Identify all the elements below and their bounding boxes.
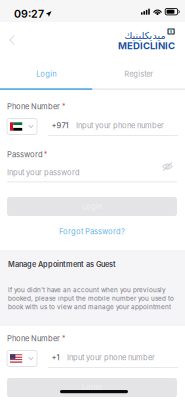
staticText: +1	[51, 353, 59, 362]
staticText: Input your phone number	[67, 353, 155, 362]
staticText: Input your phone number	[76, 121, 164, 130]
staticText: Login	[82, 202, 102, 211]
staticText: If you didn't have an account when you p…	[8, 286, 166, 294]
staticText: +971	[51, 121, 68, 130]
staticText: Phone Number	[7, 102, 60, 111]
staticText: *	[44, 150, 48, 159]
staticText: Manage Appointment as Guest	[8, 260, 116, 269]
staticText: Register	[124, 69, 153, 79]
button[interactable]: Select country code	[7, 350, 37, 366]
staticText: 09:27	[14, 7, 44, 20]
staticText: *	[62, 102, 66, 111]
button[interactable]: Login	[0, 64, 92, 90]
button[interactable]: Register	[92, 64, 185, 90]
staticText: Forgot Password?	[59, 227, 125, 236]
staticText: *	[62, 334, 66, 343]
button[interactable]: Select country code	[7, 118, 37, 134]
staticText: Login	[82, 383, 102, 392]
staticText: ميديكلينيك	[124, 30, 165, 41]
staticText: Password	[7, 150, 43, 159]
button[interactable]: Show password	[162, 162, 173, 171]
staticText: book with us to view and manage your app…	[8, 303, 171, 311]
staticText: Login	[36, 69, 56, 79]
button[interactable]: Forgot Password?	[7, 226, 177, 237]
staticText: Phone Number	[7, 334, 60, 343]
staticText: Input your password	[7, 168, 80, 177]
button[interactable]: Back	[4, 32, 20, 48]
staticText: MEDICLINIC	[118, 40, 175, 52]
staticText: booked, please input the mobile number y…	[8, 295, 174, 302]
button[interactable]: Login	[7, 378, 177, 397]
